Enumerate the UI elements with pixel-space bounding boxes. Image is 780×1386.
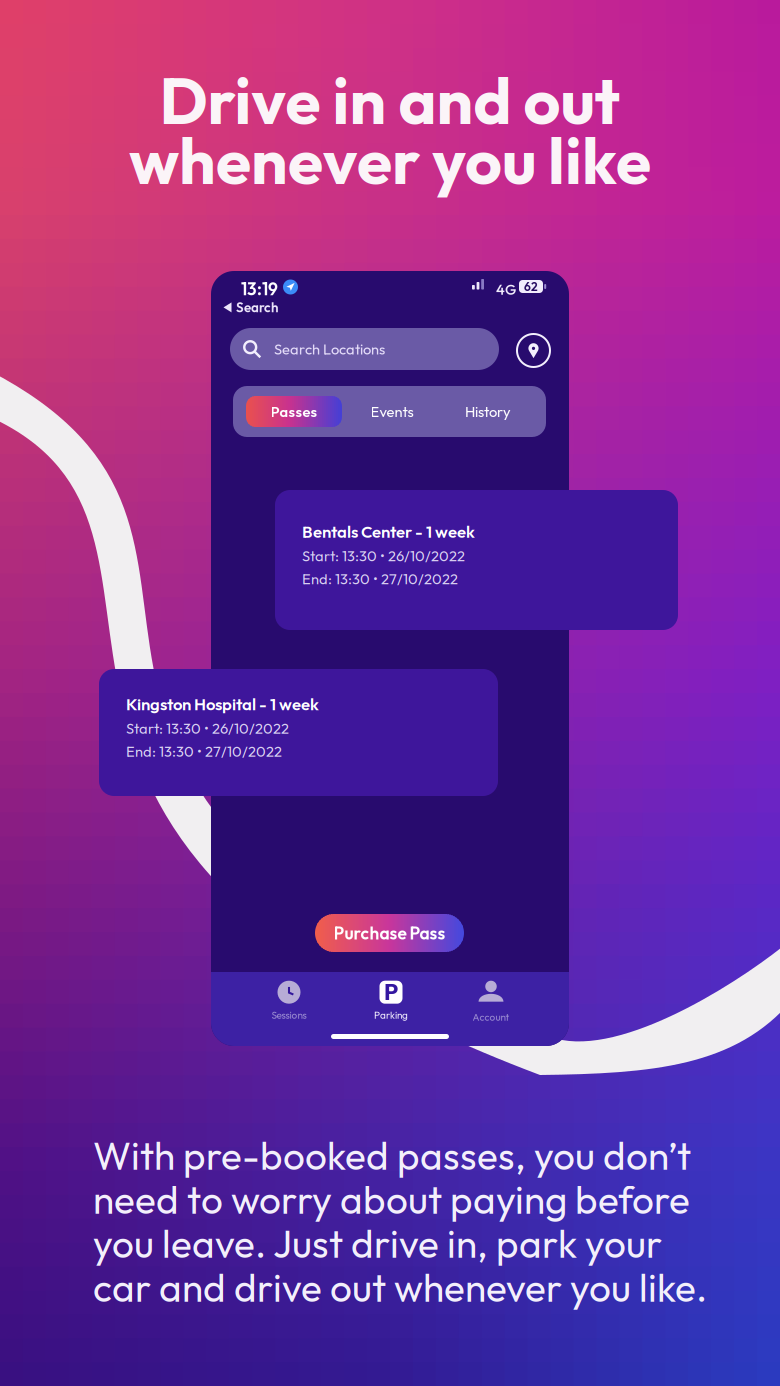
staticText: Search Locations bbox=[274, 340, 385, 358]
staticText: Sessions bbox=[271, 1009, 306, 1021]
button[interactable]: Account bbox=[441, 976, 541, 1028]
staticText: History bbox=[465, 402, 511, 421]
button[interactable]: History bbox=[440, 396, 536, 427]
button[interactable]: Purchase Pass bbox=[315, 914, 464, 952]
staticText: Start: 13:30 • 26/10/2022 bbox=[126, 719, 289, 737]
staticText: P bbox=[384, 977, 398, 1006]
staticText: 13:19 bbox=[241, 278, 278, 300]
staticText: need to worry about paying before bbox=[93, 1175, 690, 1224]
staticText: Passes bbox=[270, 402, 317, 421]
staticText: Purchase Pass bbox=[333, 922, 445, 944]
staticText: 62 bbox=[524, 279, 538, 294]
staticText: Events bbox=[370, 402, 413, 421]
staticText: Start: 13:30 • 26/10/2022 bbox=[302, 546, 465, 565]
staticText: Search bbox=[236, 299, 278, 316]
staticText: With pre-booked passes, you don’t bbox=[93, 1131, 691, 1180]
button[interactable]: Events bbox=[344, 396, 440, 427]
staticText: Parking bbox=[374, 1009, 408, 1021]
staticText: car and drive out whenever you like. bbox=[93, 1263, 707, 1312]
staticText: 4G bbox=[496, 280, 516, 298]
staticText: Bentals Center - 1 week bbox=[302, 521, 475, 542]
staticText: End: 13:30 • 27/10/2022 bbox=[302, 569, 458, 588]
button[interactable]: Search bbox=[221, 298, 280, 317]
staticText: Account bbox=[472, 1011, 509, 1023]
staticText: End: 13:30 • 27/10/2022 bbox=[126, 742, 282, 760]
button[interactable]: Search Locations bbox=[230, 328, 499, 370]
button[interactable]: Use current location bbox=[516, 333, 551, 368]
staticText: whenever you like bbox=[129, 120, 651, 201]
staticText: Drive in and out bbox=[159, 60, 620, 141]
staticText: you leave. Just drive in, park your bbox=[93, 1219, 662, 1268]
button[interactable]: Sessions bbox=[239, 975, 339, 1027]
button[interactable]: P bbox=[341, 975, 441, 1027]
staticText: Kingston Hospital - 1 week bbox=[126, 693, 319, 714]
button[interactable]: Passes bbox=[246, 396, 342, 427]
